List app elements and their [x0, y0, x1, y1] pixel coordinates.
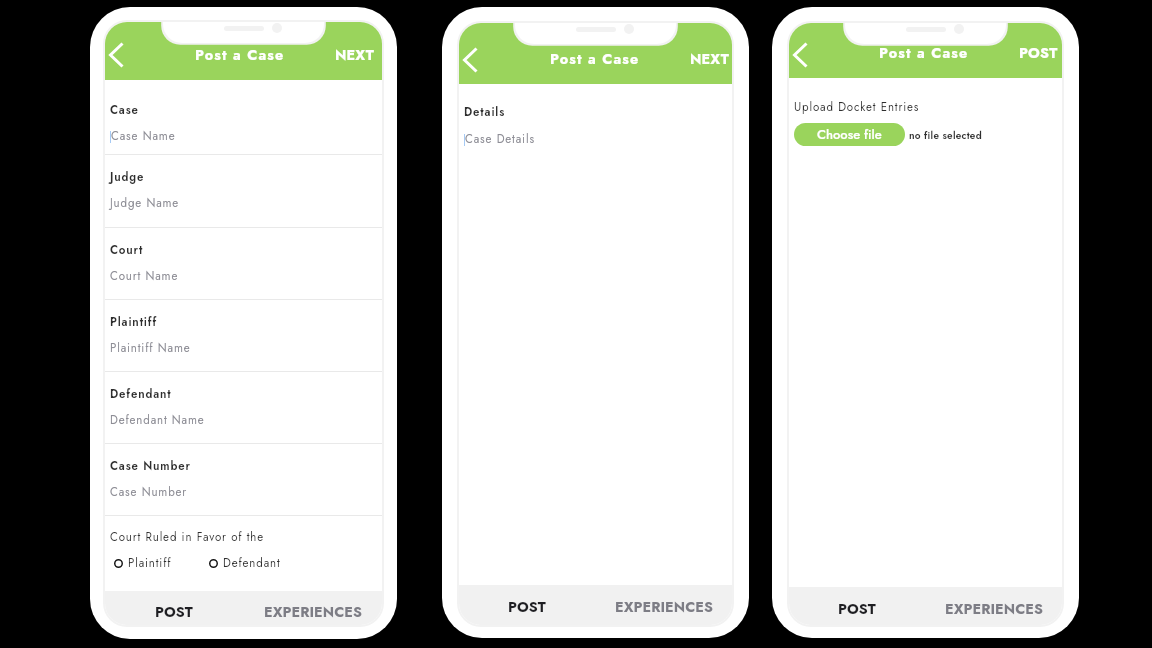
button[interactable]: Back [793, 42, 808, 68]
staticText: POST [155, 602, 193, 623]
staticText: Case Name [111, 128, 176, 145]
button[interactable]: POST [105, 591, 243, 625]
button[interactable]: Choose file [794, 123, 905, 146]
button[interactable]: EXPERIENCES [925, 587, 1062, 625]
button[interactable]: POST [459, 585, 595, 625]
staticText: NEXT [690, 49, 730, 70]
staticText: NEXT [335, 45, 375, 66]
staticText: Case Number [110, 458, 191, 475]
button[interactable]: Court [105, 228, 382, 300]
staticText: POST [508, 597, 546, 618]
staticText: Court [110, 242, 144, 259]
staticText: Judge Name [110, 195, 180, 212]
staticText: EXPERIENCES [615, 597, 713, 618]
staticText: POST [838, 599, 876, 620]
button[interactable]: Plaintiff [105, 300, 382, 372]
button[interactable]: NEXT [335, 45, 382, 80]
button[interactable]: Defendant [209, 555, 281, 572]
button[interactable]: Case Number [105, 444, 382, 516]
button[interactable]: NEXT [690, 49, 732, 84]
staticText: Choose file [817, 125, 882, 144]
staticText: EXPERIENCES [945, 599, 1043, 620]
button[interactable]: Defendant [105, 372, 382, 444]
staticText: Court Ruled in Favor of the [110, 529, 265, 546]
button[interactable]: Case [105, 80, 382, 155]
button[interactable]: EXPERIENCES [595, 585, 732, 625]
staticText: POST [1019, 43, 1058, 64]
staticText: Case Details [465, 131, 535, 148]
staticText: Case [110, 102, 139, 119]
staticText: Defendant [223, 555, 281, 572]
button[interactable]: Plaintiff [114, 555, 172, 572]
staticText: Case Number [110, 484, 188, 501]
button[interactable]: POST [789, 587, 925, 625]
staticText: Plaintiff Name [110, 340, 191, 357]
staticText: Post a Case [195, 45, 285, 66]
button[interactable]: Back [463, 47, 478, 73]
button[interactable]: POST [1019, 43, 1062, 78]
staticText: EXPERIENCES [264, 602, 362, 623]
staticText: no file selected [909, 128, 982, 142]
button[interactable]: Judge [105, 155, 382, 228]
staticText: Court Name [110, 268, 179, 285]
staticText: Defendant Name [110, 412, 205, 429]
staticText: Plaintiff [128, 555, 172, 572]
staticText: Judge [110, 169, 145, 186]
staticText: Defendant [110, 386, 172, 403]
button[interactable]: EXPERIENCES [243, 591, 382, 625]
staticText: Post a Case [550, 49, 640, 70]
button[interactable]: Back [109, 42, 124, 68]
staticText: Post a Case [879, 43, 969, 64]
staticText: Details [464, 104, 506, 121]
staticText: Upload Docket Entries [794, 99, 920, 116]
staticText: Plaintiff [110, 314, 158, 331]
